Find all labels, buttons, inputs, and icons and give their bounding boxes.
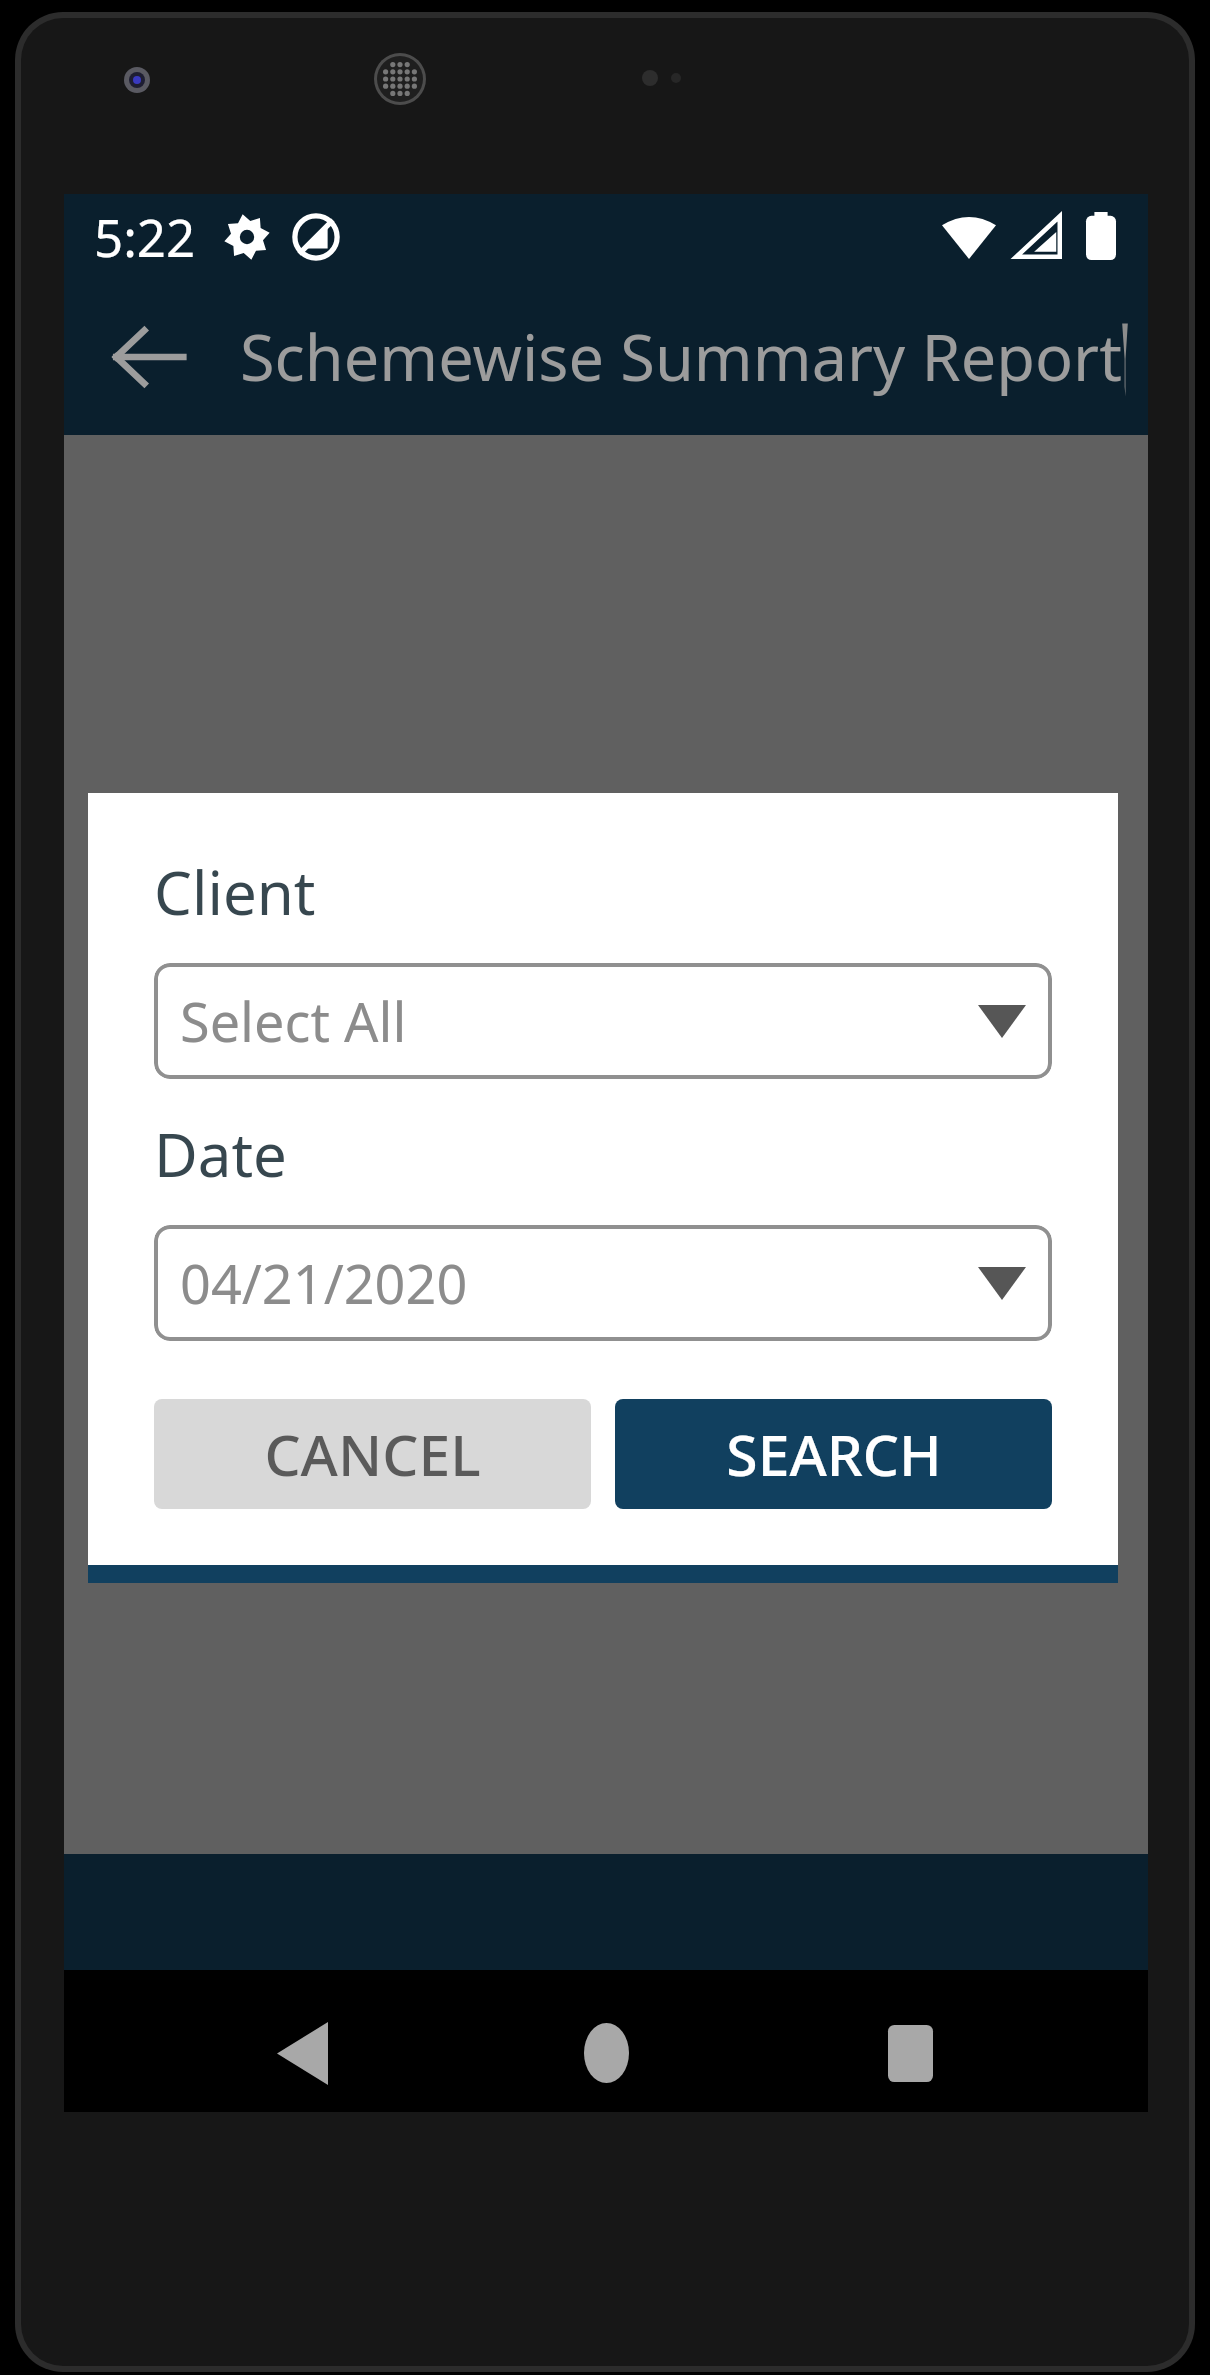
- staticText: Schemewise Summary Report: [240, 314, 1122, 400]
- button[interactable]: Home: [540, 1994, 672, 2112]
- button[interactable]: CANCEL: [154, 1399, 591, 1509]
- staticText: Client: [154, 851, 316, 933]
- staticText: Select All: [180, 984, 407, 1058]
- button[interactable]: 04/21/2020: [154, 1225, 1052, 1341]
- button[interactable]: Back: [80, 288, 218, 426]
- staticText: CANCEL: [264, 1415, 481, 1493]
- button[interactable]: SEARCH: [615, 1399, 1052, 1509]
- button[interactable]: Recent apps: [844, 1994, 976, 2112]
- staticText: SEARCH: [726, 1415, 942, 1493]
- staticText: Date: [154, 1113, 287, 1195]
- button[interactable]: Back: [236, 1994, 368, 2112]
- button[interactable]: Select All: [154, 963, 1052, 1079]
- staticText: 04/21/2020: [180, 1246, 468, 1320]
- button[interactable]: Filter: [1122, 288, 1128, 426]
- staticText: 5:22: [94, 202, 196, 271]
